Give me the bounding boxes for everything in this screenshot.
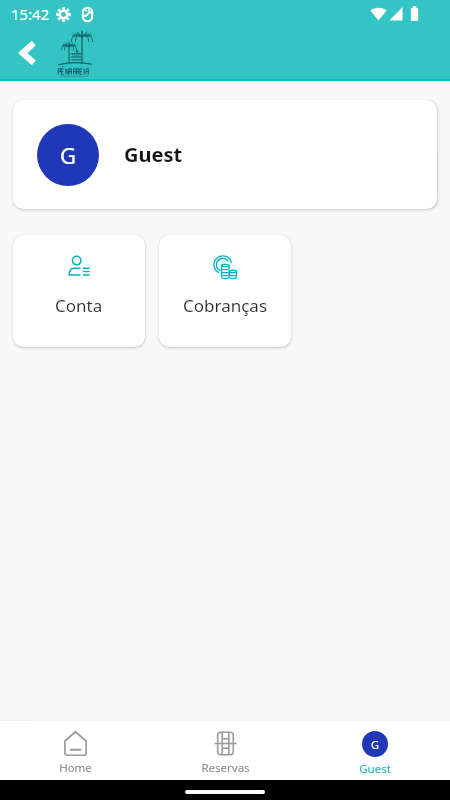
button[interactable]: G [300,721,450,780]
staticText: Home [59,760,92,776]
button[interactable]: Back [10,35,46,71]
staticText: Reservas [201,760,250,776]
button[interactable]: Conta [13,235,145,347]
staticText: G [60,140,77,170]
staticText: Cobranças [183,294,268,317]
staticText: Guest [124,141,183,168]
staticText: Guest [359,761,391,777]
staticText: Conta [55,294,103,317]
button[interactable]: G [13,100,437,209]
staticText: G [371,737,380,752]
button[interactable]: Home [0,721,150,780]
staticText: 15:42 [11,4,50,24]
button[interactable]: Cobranças [159,235,291,347]
button[interactable]: Reservas [150,721,300,780]
